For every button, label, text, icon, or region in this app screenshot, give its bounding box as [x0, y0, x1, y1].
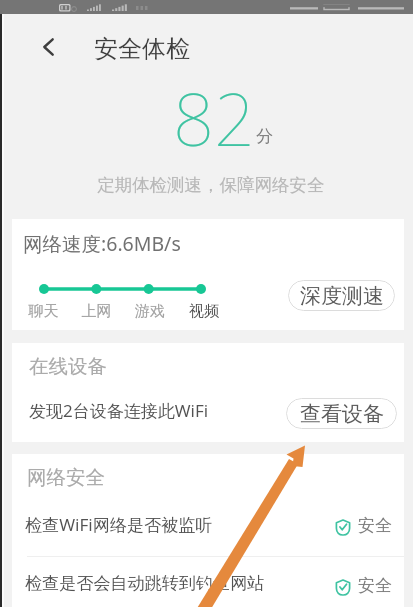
button[interactable]: 查看设备 [286, 398, 397, 429]
staticText: 视频 [177, 302, 231, 321]
staticText: 82 [173, 69, 256, 167]
staticText: 查看设备 [300, 401, 384, 427]
staticText: 网络安全 [27, 465, 105, 490]
button[interactable]: 检查是否会自动跳转到钓鱼网站 [12, 561, 404, 607]
staticText: 检查是否会自动跳转到钓鱼网站 [25, 573, 333, 595]
button[interactable]: 深度测速 [288, 280, 395, 311]
staticText: 深度测速 [300, 283, 384, 309]
staticText: 游戏 [123, 302, 177, 321]
staticText: 发现2台设备连接此WiFi [29, 399, 209, 422]
staticText: 检查WiFi网络是否被监听 [25, 513, 333, 536]
staticText: 定期体检测速，保障网络安全 [97, 174, 325, 196]
staticText: 分 [256, 126, 273, 147]
button[interactable]: Back [33, 32, 63, 62]
staticText: 在线设备 [29, 354, 107, 379]
staticText: 安全体检 [94, 34, 190, 64]
staticText: 安全 [358, 575, 392, 596]
staticText: 网络速度:6.6MB/s [23, 230, 181, 257]
button[interactable]: 检查WiFi网络是否被监听 [12, 501, 404, 547]
staticText: 安全 [358, 515, 392, 536]
staticText: 上网 [70, 302, 123, 321]
staticText: 聊天 [17, 302, 70, 321]
